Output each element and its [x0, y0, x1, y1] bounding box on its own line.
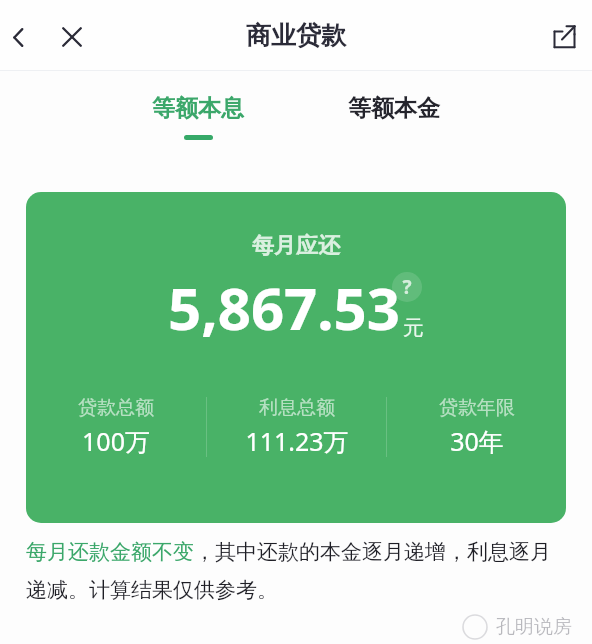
staticText: 5,867.53 [168, 268, 400, 347]
button[interactable]: Share [542, 14, 586, 58]
button[interactable]: 等额本息 [123, 71, 273, 167]
staticText: 孔明说房 [496, 615, 572, 639]
staticText: 商业贷款 [246, 20, 346, 51]
button[interactable]: 贷款总额 [26, 396, 206, 458]
button[interactable]: Back [0, 15, 40, 59]
button[interactable]: 每月应还 [26, 192, 566, 523]
staticText: 贷款总额 [78, 396, 154, 420]
button[interactable]: Close [50, 15, 94, 59]
staticText: 100万 [82, 424, 150, 458]
staticText: 111.23万 [245, 424, 349, 458]
staticText: 每月应还 [252, 232, 340, 260]
staticText: 利息总额 [259, 396, 335, 420]
staticText: 30年 [450, 424, 504, 458]
staticText: 等额本息 [152, 94, 244, 123]
button[interactable]: 贷款年限 [387, 396, 566, 458]
staticText: 元 [403, 315, 424, 341]
staticText: 贷款年限 [439, 396, 515, 420]
button[interactable]: Help [392, 272, 422, 302]
button[interactable]: 等额本金 [319, 71, 469, 167]
staticText: ? [402, 274, 412, 300]
staticText: 每月还款金额不变，其中还款的本金逐月递增，利息逐月递减。计算结果仅供参考。 [26, 539, 570, 604]
button[interactable]: 利息总额 [207, 396, 386, 458]
staticText: 等额本金 [348, 94, 440, 123]
